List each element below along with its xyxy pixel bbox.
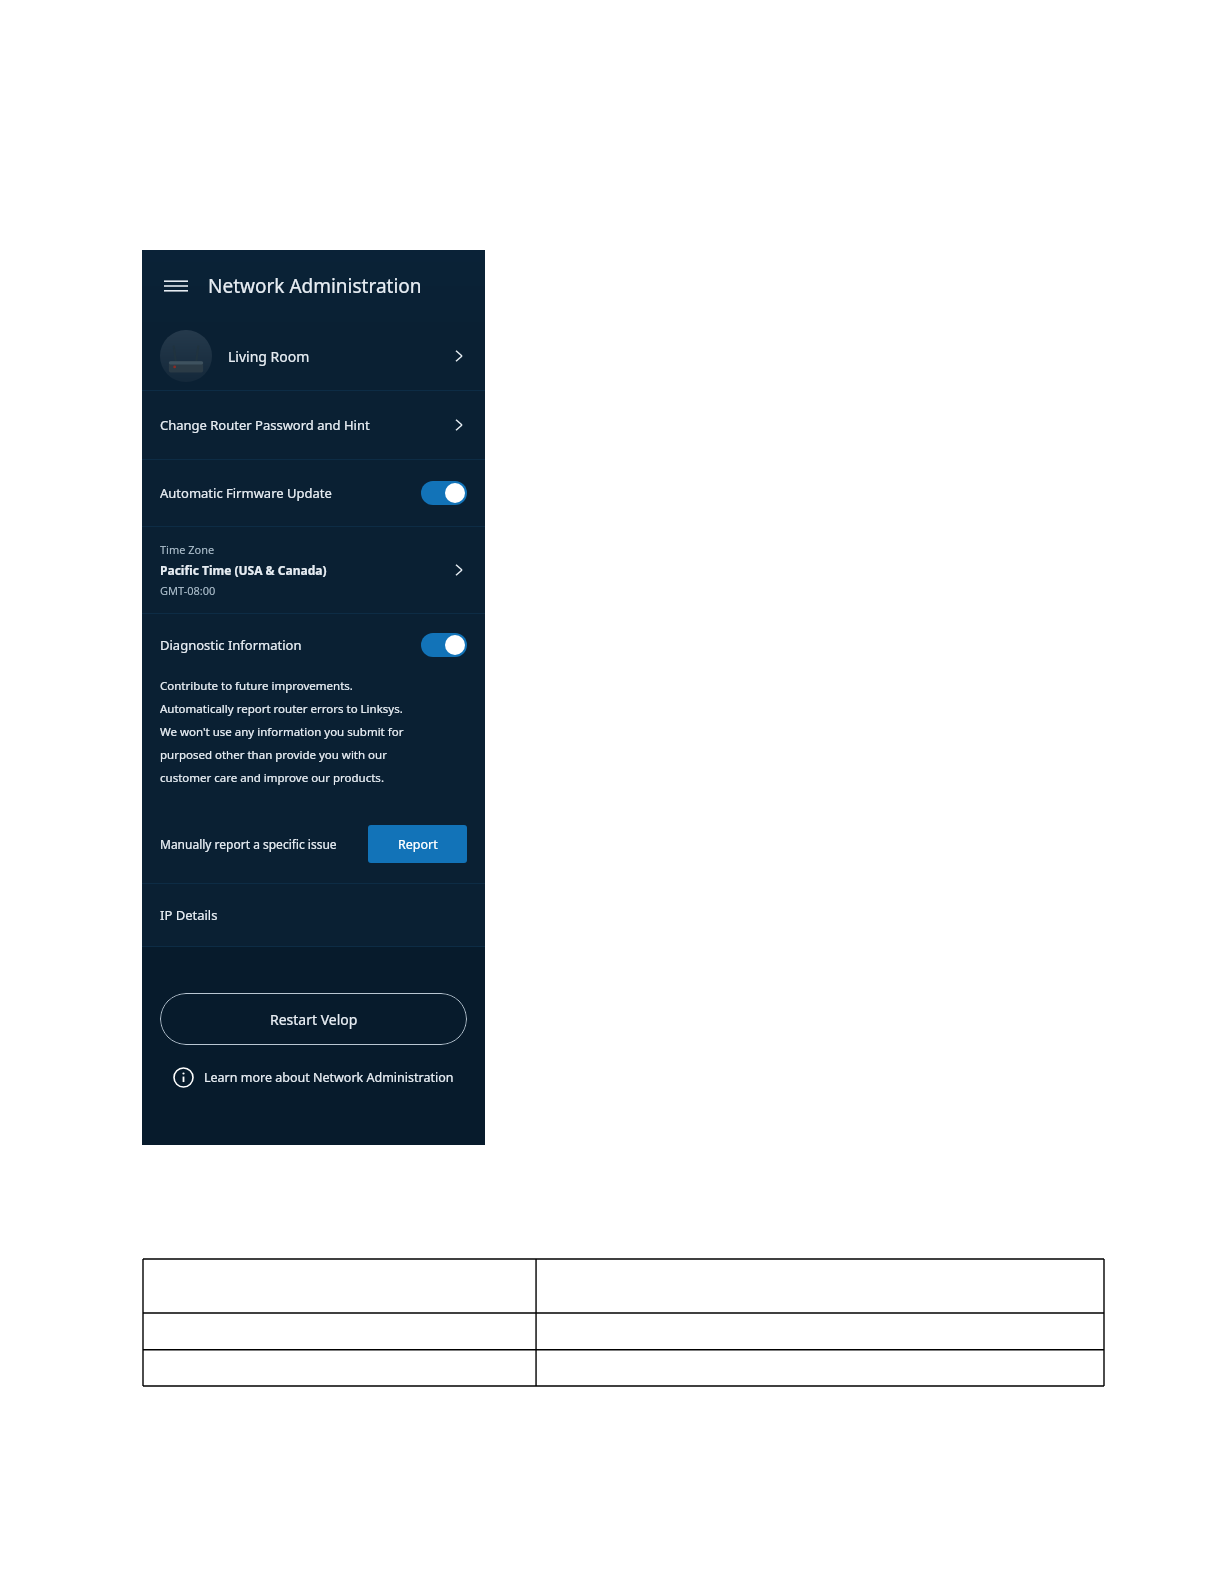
button[interactable]: Restart Velop xyxy=(160,993,467,1045)
button[interactable]: Living Room xyxy=(142,322,485,390)
button[interactable]: Time Zone xyxy=(142,527,485,613)
button[interactable]: Toggle on xyxy=(421,633,467,657)
staticText: Time Zone xyxy=(160,542,215,557)
staticText: Report xyxy=(398,836,438,853)
staticText: We won't use any information you submit … xyxy=(160,724,404,740)
other: Information xyxy=(173,1067,194,1088)
staticText: purposed other than provide you with our xyxy=(160,747,387,763)
staticText: IP Details xyxy=(160,906,218,924)
button[interactable]: Automatic Firmware Update xyxy=(142,460,485,526)
staticText: GMT-08:00 xyxy=(160,583,216,598)
staticText: Automatic Firmware Update xyxy=(160,484,332,502)
button[interactable]: Report xyxy=(368,825,467,863)
button[interactable]: IP Details xyxy=(142,884,485,946)
staticText: Manually report a specific issue xyxy=(160,836,337,852)
staticText: Automatically report router errors to Li… xyxy=(160,701,403,717)
button[interactable]: Information xyxy=(173,1067,454,1088)
staticText: Diagnostic Information xyxy=(160,636,302,654)
staticText: Change Router Password and Hint xyxy=(160,416,370,434)
button[interactable]: Menu xyxy=(158,268,194,304)
staticText: Pacific Time (USA & Canada) xyxy=(160,562,327,578)
button[interactable]: Diagnostic Information xyxy=(142,614,485,676)
staticText: Learn more about Network Administration xyxy=(204,1069,454,1086)
staticText: Living Room xyxy=(228,347,310,366)
button[interactable]: Change Router Password and Hint xyxy=(142,391,485,459)
staticText: Contribute to future improvements. xyxy=(160,678,353,694)
staticText: Restart Velop xyxy=(270,1010,358,1029)
button[interactable]: Toggle on xyxy=(421,481,467,505)
staticText: customer care and improve our products. xyxy=(160,770,384,786)
staticText: Network Administration xyxy=(208,273,422,299)
